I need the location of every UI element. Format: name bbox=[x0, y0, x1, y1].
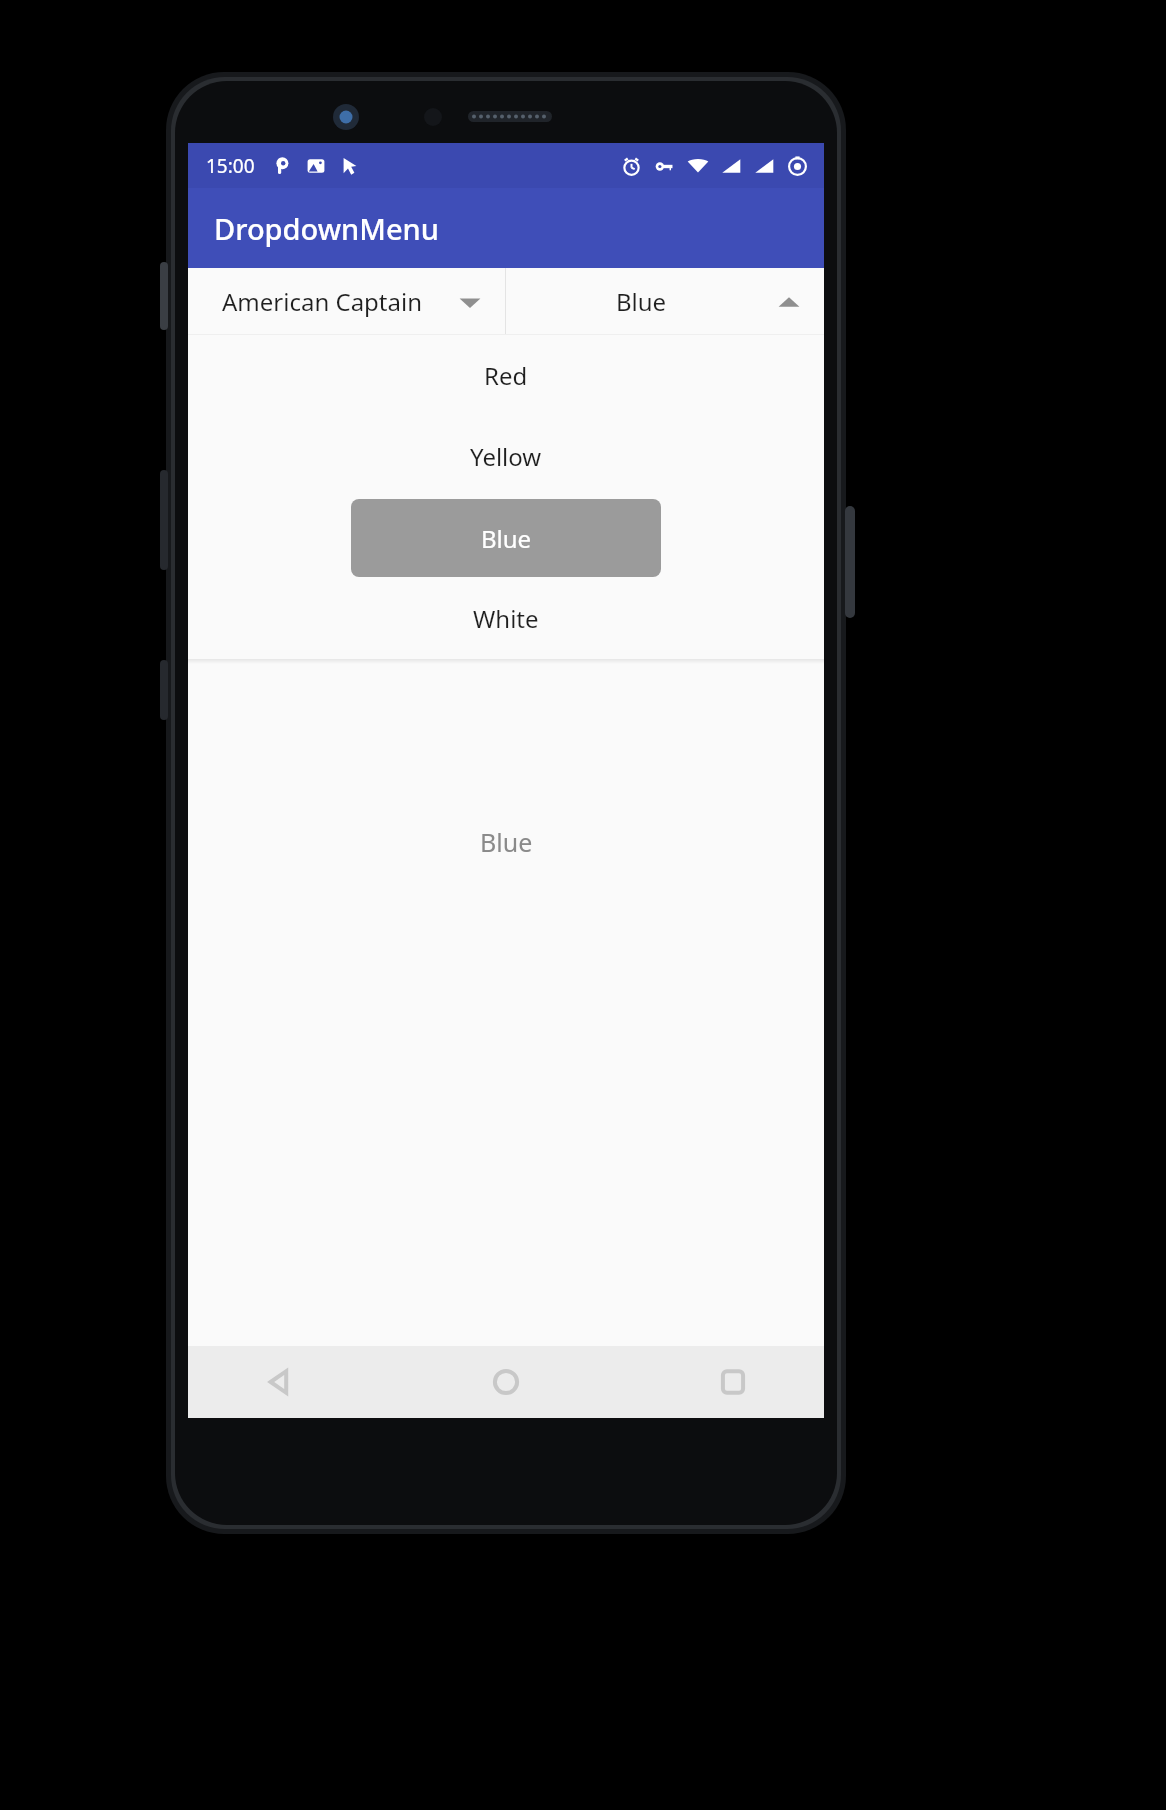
button[interactable]: American Captain bbox=[188, 268, 505, 334]
staticText: Red bbox=[484, 359, 528, 392]
button[interactable]: Blue bbox=[506, 268, 824, 334]
button[interactable]: Red bbox=[188, 335, 824, 416]
button[interactable]: Recent apps bbox=[702, 1351, 764, 1413]
button[interactable]: Home bbox=[475, 1351, 537, 1413]
button[interactable]: Back bbox=[248, 1351, 310, 1413]
button[interactable]: White bbox=[188, 578, 824, 659]
staticText: American Captain bbox=[222, 285, 423, 318]
staticText: Blue bbox=[480, 825, 533, 859]
staticText: White bbox=[473, 602, 539, 635]
staticText: 15:00 bbox=[206, 153, 255, 179]
staticText: Blue bbox=[616, 285, 667, 318]
button[interactable]: Yellow bbox=[188, 416, 824, 497]
staticText: Yellow bbox=[470, 440, 542, 473]
button[interactable]: Blue bbox=[188, 497, 824, 578]
staticText: Blue bbox=[481, 522, 532, 555]
staticText: DropdownMenu bbox=[214, 209, 439, 248]
